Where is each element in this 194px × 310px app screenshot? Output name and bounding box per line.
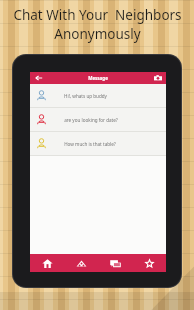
button[interactable]: Home: [30, 254, 64, 272]
staticText: Chat With Your Neighbors: [13, 6, 182, 24]
staticText: Anonymously: [54, 25, 141, 43]
staticText: are you looking for date?: [64, 117, 118, 123]
staticText: Message: [88, 75, 108, 81]
button[interactable]: Messages: [98, 254, 132, 272]
button[interactable]: are you looking for date?: [30, 108, 166, 131]
button[interactable]: Favorites: [132, 254, 166, 272]
button[interactable]: How much is that table?: [30, 132, 166, 155]
staticText: How much is that table?: [64, 141, 116, 147]
button[interactable]: Camera: [154, 74, 162, 82]
staticText: Hi!, whats up buddy: [64, 93, 107, 99]
button[interactable]: Hi!, whats up buddy: [30, 84, 166, 107]
button[interactable]: Back: [34, 73, 44, 83]
button[interactable]: Categories: [64, 254, 98, 272]
